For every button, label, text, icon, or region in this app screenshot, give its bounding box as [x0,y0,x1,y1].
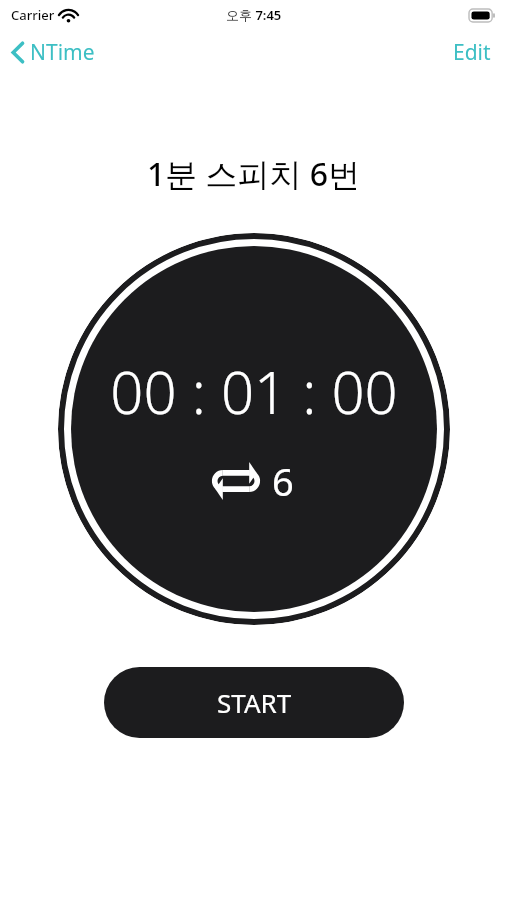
staticText: 00 : 01 : 00 [110,352,398,431]
button[interactable]: 00 : 01 : 00 [58,233,450,625]
other: Repeat count [214,463,258,499]
staticText: NTime [30,38,95,67]
staticText: 1분 스피치 6번 [0,152,507,196]
button[interactable]: NTime [0,32,107,73]
staticText: 6 [272,455,294,507]
button[interactable]: START [104,667,404,738]
other: Wi-Fi [60,9,77,22]
staticText: Carrier [11,6,55,24]
other: Battery full [469,9,495,22]
staticText: 오후 7:45 [226,6,282,24]
staticText: Edit [453,38,491,66]
button[interactable]: Edit [437,30,507,74]
staticText: START [217,685,292,720]
